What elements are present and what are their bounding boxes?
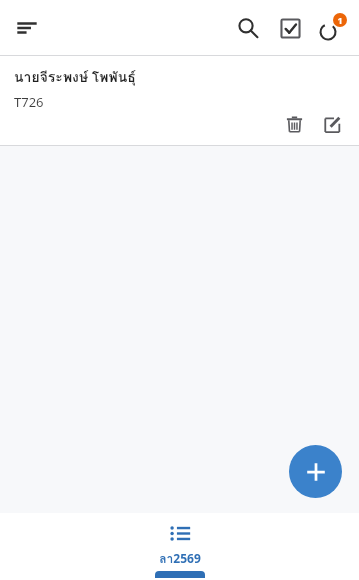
button[interactable]: Sort: [4, 5, 50, 51]
staticText: T726: [14, 93, 44, 111]
button[interactable]: Search: [227, 7, 269, 49]
staticText: นายจีระพงษ์ โพพันธุ์: [14, 66, 136, 88]
button[interactable]: Delete: [275, 105, 313, 143]
button[interactable]: Edit: [313, 105, 351, 143]
staticText: ลา2569: [159, 549, 201, 568]
button[interactable]: Add: [289, 445, 342, 498]
button[interactable]: Sync: [311, 7, 353, 49]
button[interactable]: ลา2569: [125, 513, 235, 568]
button[interactable]: นายจีระพงษ์ โพพันธุ์: [0, 56, 359, 145]
staticText: 1: [337, 14, 343, 26]
button[interactable]: Select all: [269, 7, 311, 49]
